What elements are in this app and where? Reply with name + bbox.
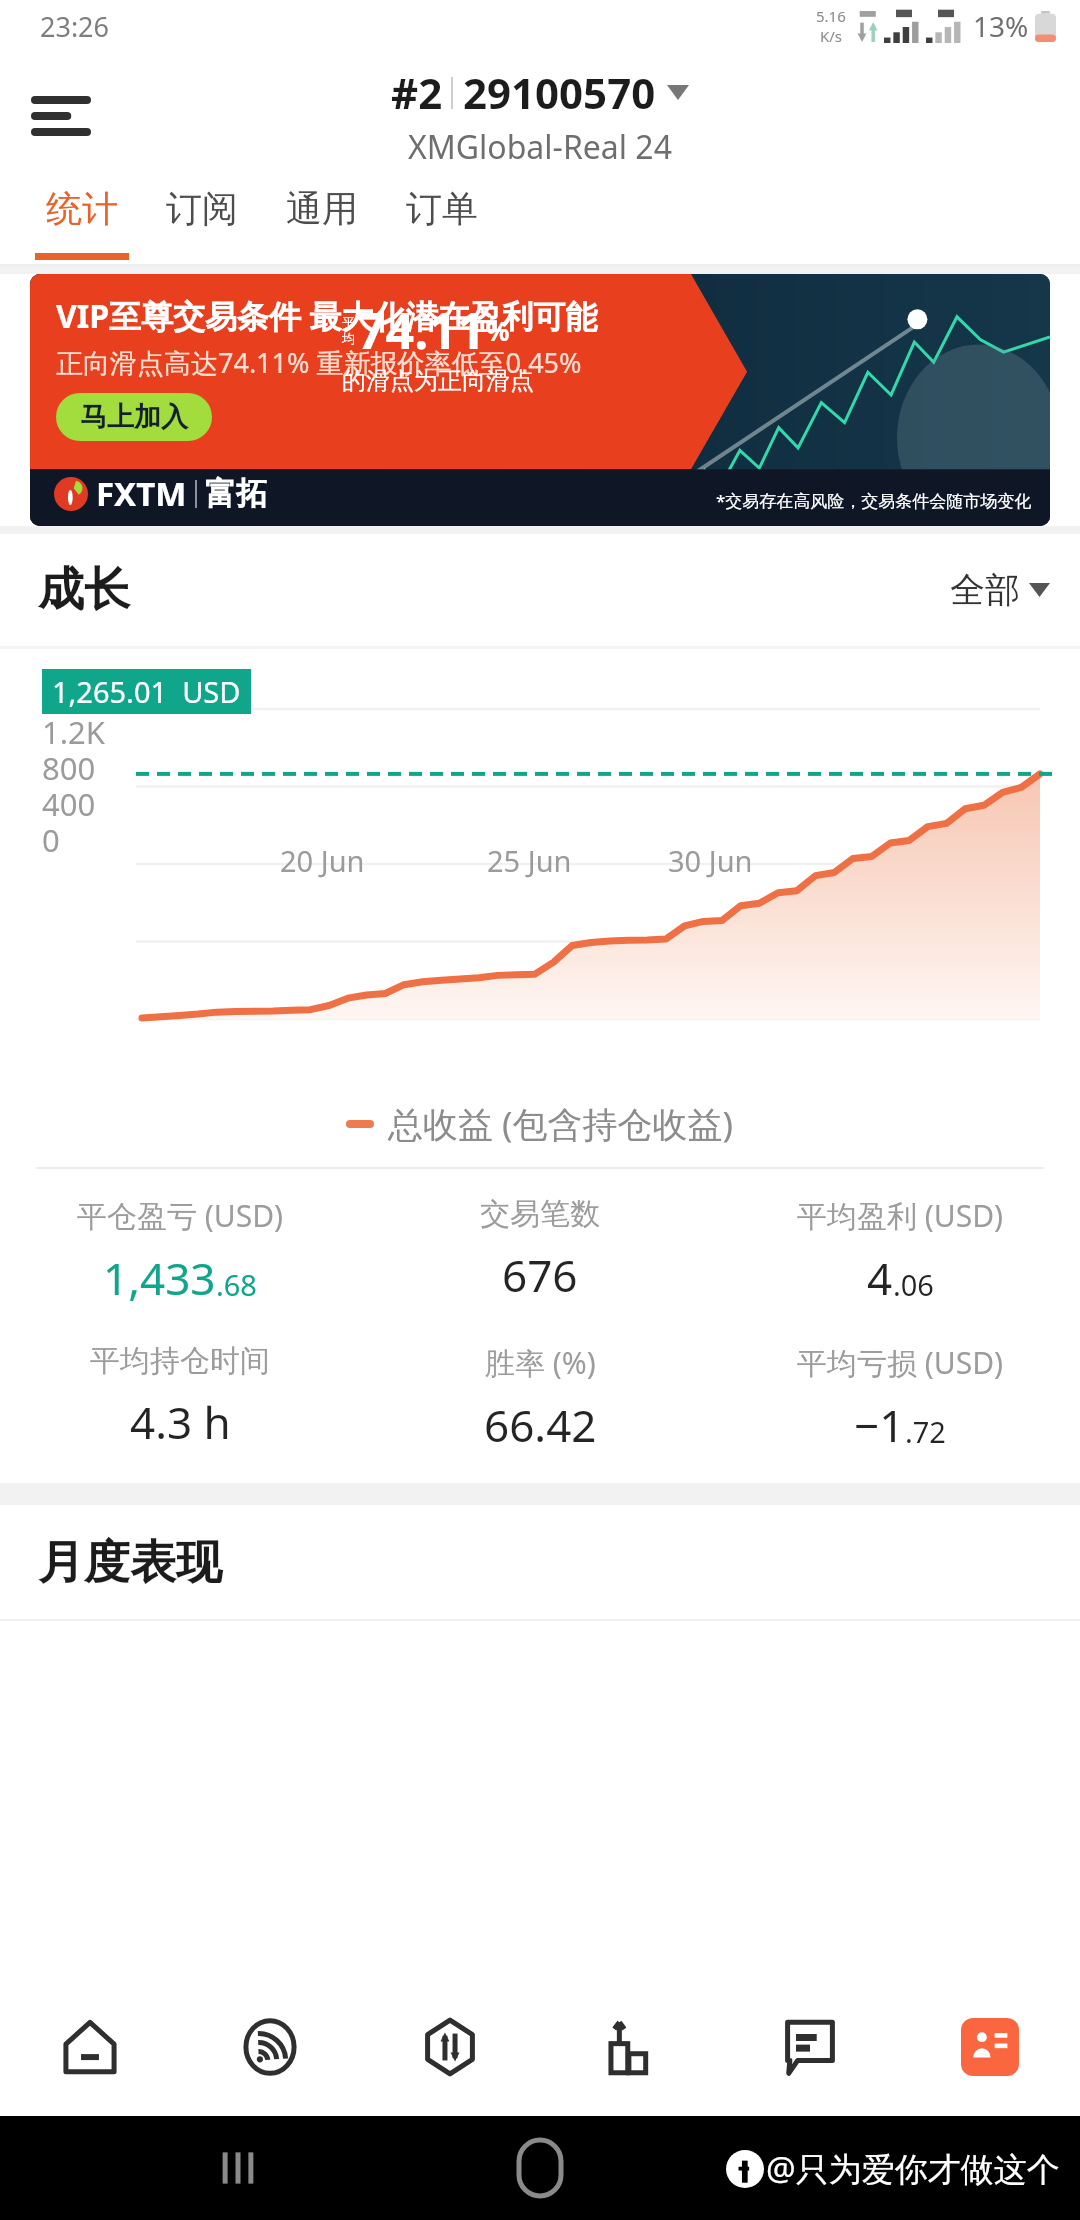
staticText: VIP至尊交易条件 最大化潜在盈利可能 — [56, 294, 598, 338]
button[interactable]: 全部 — [950, 568, 1050, 612]
staticText: 66.42 — [484, 1395, 597, 1455]
staticText: .68 — [216, 1265, 257, 1304]
button[interactable]: 统计 — [22, 180, 142, 266]
staticText: 25 Jun — [487, 841, 572, 880]
staticText: 1,433 — [103, 1248, 216, 1308]
staticText: −1 — [854, 1395, 905, 1455]
staticText: 的滑点为正向滑点 — [342, 366, 534, 396]
staticText: 1.6K — [42, 676, 105, 718]
staticText: 均 — [342, 330, 355, 346]
button[interactable]: Messages — [720, 1978, 900, 2116]
staticText: K/s — [820, 26, 843, 46]
button[interactable]: 平均盈利 (USD) — [720, 1195, 1080, 1308]
staticText: 交易笔数 — [480, 1195, 600, 1233]
staticText: @只为爱你才做这个 — [766, 2146, 1060, 2191]
button[interactable]: 订单 — [382, 180, 502, 266]
staticText: 总收益 (包含持仓收益) — [388, 1100, 734, 1148]
staticText: 676 — [502, 1245, 578, 1305]
staticText: 正向滑点高达74.11% 重新报价率低至0.45% — [56, 344, 582, 381]
staticText: *交易存在高风险，交易条件会随市场变化 — [716, 489, 1032, 512]
staticText: 马上加入 — [80, 400, 188, 434]
button[interactable]: Statistics — [540, 1978, 720, 2116]
staticText: 平仓盈亏 (USD) — [77, 1195, 284, 1236]
staticText: 30 Jun — [668, 841, 753, 880]
staticText: FXTM — [96, 471, 187, 516]
staticText: 月度表现 — [38, 1534, 222, 1592]
staticText: 胜率 (%) — [485, 1342, 596, 1383]
button[interactable]: Signals — [180, 1978, 360, 2116]
button[interactable]: VIP至尊交易条件 最大化潜在盈利可能 — [30, 274, 1050, 526]
button[interactable]: Trade — [360, 1978, 540, 2116]
staticText: 5.16 — [816, 6, 846, 26]
staticText: 29100570 — [463, 64, 656, 121]
staticText: 富拓 — [205, 474, 267, 513]
button[interactable]: 马上加入 — [80, 400, 188, 434]
staticText: 1.2K — [42, 711, 105, 753]
staticText: 统计 — [46, 186, 118, 231]
staticText: 800 — [42, 747, 96, 789]
staticText: 4.3 h — [130, 1392, 231, 1452]
staticText: 20 Jun — [280, 841, 365, 880]
button[interactable]: Profile — [900, 1978, 1080, 2116]
button[interactable]: 通用 — [262, 180, 382, 266]
button[interactable]: Menu — [26, 81, 96, 151]
button[interactable]: 平均亏损 (USD) — [720, 1342, 1080, 1455]
staticText: 订阅 — [166, 186, 238, 231]
staticText: 4 — [867, 1248, 893, 1308]
staticText: % — [486, 313, 510, 348]
button[interactable]: 平仓盈亏 (USD) — [0, 1195, 360, 1308]
staticText: 通用 — [286, 186, 358, 231]
staticText: .06 — [893, 1265, 934, 1304]
staticText: 0 — [42, 819, 60, 861]
button[interactable]: 交易笔数 — [360, 1195, 720, 1305]
button[interactable]: 胜率 (%) — [360, 1342, 720, 1455]
staticText: 成长 — [38, 561, 130, 619]
staticText: 13% — [973, 7, 1029, 45]
staticText: 23:26 — [40, 8, 110, 45]
staticText: .72 — [905, 1412, 946, 1451]
staticText: 订单 — [406, 186, 478, 231]
staticText: 平 — [342, 314, 355, 330]
staticText: 74.11 — [357, 296, 486, 364]
button[interactable]: 订阅 — [142, 180, 262, 266]
staticText: 全部 — [950, 568, 1020, 612]
button[interactable]: Home — [0, 1978, 180, 2116]
staticText: XMGlobal-Real 24 — [408, 125, 672, 169]
button[interactable]: #2 — [391, 64, 689, 121]
staticText: 400 — [42, 783, 96, 825]
staticText: 平均亏损 (USD) — [797, 1342, 1004, 1383]
staticText: 平均持仓时间 — [90, 1342, 270, 1380]
button[interactable]: 平均持仓时间 — [0, 1342, 360, 1452]
staticText: 平均盈利 (USD) — [797, 1195, 1004, 1236]
staticText: 1,265.01 USD — [52, 672, 241, 711]
staticText: #2 — [391, 64, 443, 121]
